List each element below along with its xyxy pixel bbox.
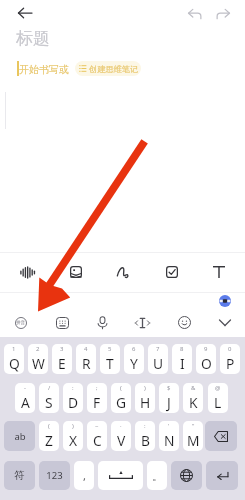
button[interactable]: : xyxy=(135,421,155,451)
staticText: 拼音 xyxy=(16,320,26,326)
staticText: B xyxy=(141,431,150,450)
staticText: & xyxy=(191,384,196,392)
button[interactable]: / xyxy=(39,383,59,413)
button[interactable]: ( xyxy=(111,383,131,413)
staticText: N xyxy=(164,431,175,450)
staticText: 3 xyxy=(60,345,64,353)
staticText: X xyxy=(69,431,78,450)
button[interactable]: ) xyxy=(63,421,83,451)
staticText: 4 xyxy=(84,345,88,353)
staticText: / xyxy=(48,384,51,392)
staticText: G xyxy=(116,393,127,412)
staticText: Q xyxy=(9,354,20,373)
staticText: ( xyxy=(48,422,50,430)
button[interactable]: Voice input xyxy=(82,292,122,337)
staticText: ) xyxy=(144,384,146,392)
staticText: A xyxy=(21,393,30,412)
button[interactable]: @ xyxy=(208,383,228,413)
button[interactable]: Undo xyxy=(181,1,207,27)
staticText: D xyxy=(68,393,79,412)
staticText: 8 xyxy=(180,345,184,353)
staticText: V xyxy=(117,431,126,450)
button[interactable]: 。 xyxy=(147,461,167,490)
staticText: ; xyxy=(96,384,98,392)
staticText: R xyxy=(82,354,91,373)
staticText: - xyxy=(24,384,26,392)
button[interactable]: Account xyxy=(219,295,231,307)
staticText: : xyxy=(72,384,74,392)
button[interactable]: 5 xyxy=(100,344,120,374)
button[interactable]: 123 xyxy=(39,461,70,490)
staticText: Y xyxy=(130,354,138,373)
staticText: 5 xyxy=(108,345,112,353)
button[interactable]: enter xyxy=(206,461,238,490)
button[interactable]: Emoji xyxy=(164,292,204,337)
button[interactable]: · xyxy=(111,421,131,451)
button[interactable]: " xyxy=(183,421,203,451)
staticText: C xyxy=(93,431,102,450)
button[interactable]: 7 xyxy=(148,344,168,374)
button[interactable]: 4 xyxy=(76,344,96,374)
button[interactable]: 0 xyxy=(220,344,240,374)
staticText: @ xyxy=(215,384,221,392)
button[interactable]: $ xyxy=(159,383,179,413)
staticText: T xyxy=(106,354,114,373)
staticText: 9 xyxy=(204,345,208,353)
button[interactable]: Handwriting xyxy=(99,252,147,292)
staticText: 。 xyxy=(152,469,163,483)
button[interactable]: Back xyxy=(9,0,40,26)
button[interactable]: Text style xyxy=(195,252,243,292)
staticText: E xyxy=(58,354,66,373)
staticText: , xyxy=(83,468,86,483)
staticText: ab xyxy=(14,430,26,443)
staticText: · xyxy=(120,422,122,430)
button[interactable]: backspace xyxy=(205,421,237,451)
staticText: " xyxy=(192,422,195,430)
button[interactable]: Redo xyxy=(210,1,236,27)
button[interactable]: Move cursor xyxy=(122,292,162,337)
button[interactable]: - xyxy=(15,383,35,413)
button[interactable]: ' xyxy=(159,421,179,451)
button[interactable]: 3 xyxy=(52,344,72,374)
button[interactable]: Audio xyxy=(3,252,51,292)
button[interactable]: Checklist xyxy=(148,252,196,292)
staticText: ) xyxy=(72,422,74,430)
button[interactable]: ( xyxy=(39,421,59,451)
button[interactable]: Image xyxy=(52,252,100,292)
staticText: J xyxy=(167,393,171,412)
button[interactable]: 8 xyxy=(172,344,192,374)
staticText: O xyxy=(201,354,212,373)
button[interactable]: ; xyxy=(87,383,107,413)
staticText: 7 xyxy=(156,345,160,353)
button[interactable]: ab xyxy=(4,421,35,451)
button[interactable]: & xyxy=(183,383,203,413)
staticText: : xyxy=(144,422,146,430)
button[interactable]: Keyboard layout xyxy=(42,292,82,337)
button[interactable]: : xyxy=(63,383,83,413)
button[interactable]: Input method xyxy=(1,292,41,337)
button[interactable]: 2 xyxy=(28,344,48,374)
button[interactable]: ~ xyxy=(87,421,107,451)
button[interactable]: Space xyxy=(98,461,143,490)
staticText: P xyxy=(226,354,235,373)
staticText: 123 xyxy=(46,469,63,482)
button[interactable]: Hide keyboard xyxy=(205,292,245,337)
button[interactable]: 创建思维笔记 xyxy=(75,61,141,76)
staticText: ( xyxy=(120,384,122,392)
button[interactable]: 6 xyxy=(124,344,144,374)
button[interactable]: 1 xyxy=(4,344,24,374)
staticText: S xyxy=(45,393,53,412)
staticText: K xyxy=(189,393,198,412)
button[interactable]: 9 xyxy=(196,344,216,374)
staticText: 标题 xyxy=(16,28,50,49)
button[interactable]: 符 xyxy=(4,461,35,490)
button[interactable]: ) xyxy=(135,383,155,413)
button[interactable]: , xyxy=(74,461,94,490)
button[interactable]: globe xyxy=(171,461,202,490)
staticText: 符 xyxy=(14,469,25,482)
staticText: Z xyxy=(45,431,53,450)
staticText: 创建思维笔记 xyxy=(89,64,139,74)
staticText: L xyxy=(214,393,222,412)
staticText: ~ xyxy=(95,422,99,430)
staticText: $ xyxy=(167,384,171,392)
